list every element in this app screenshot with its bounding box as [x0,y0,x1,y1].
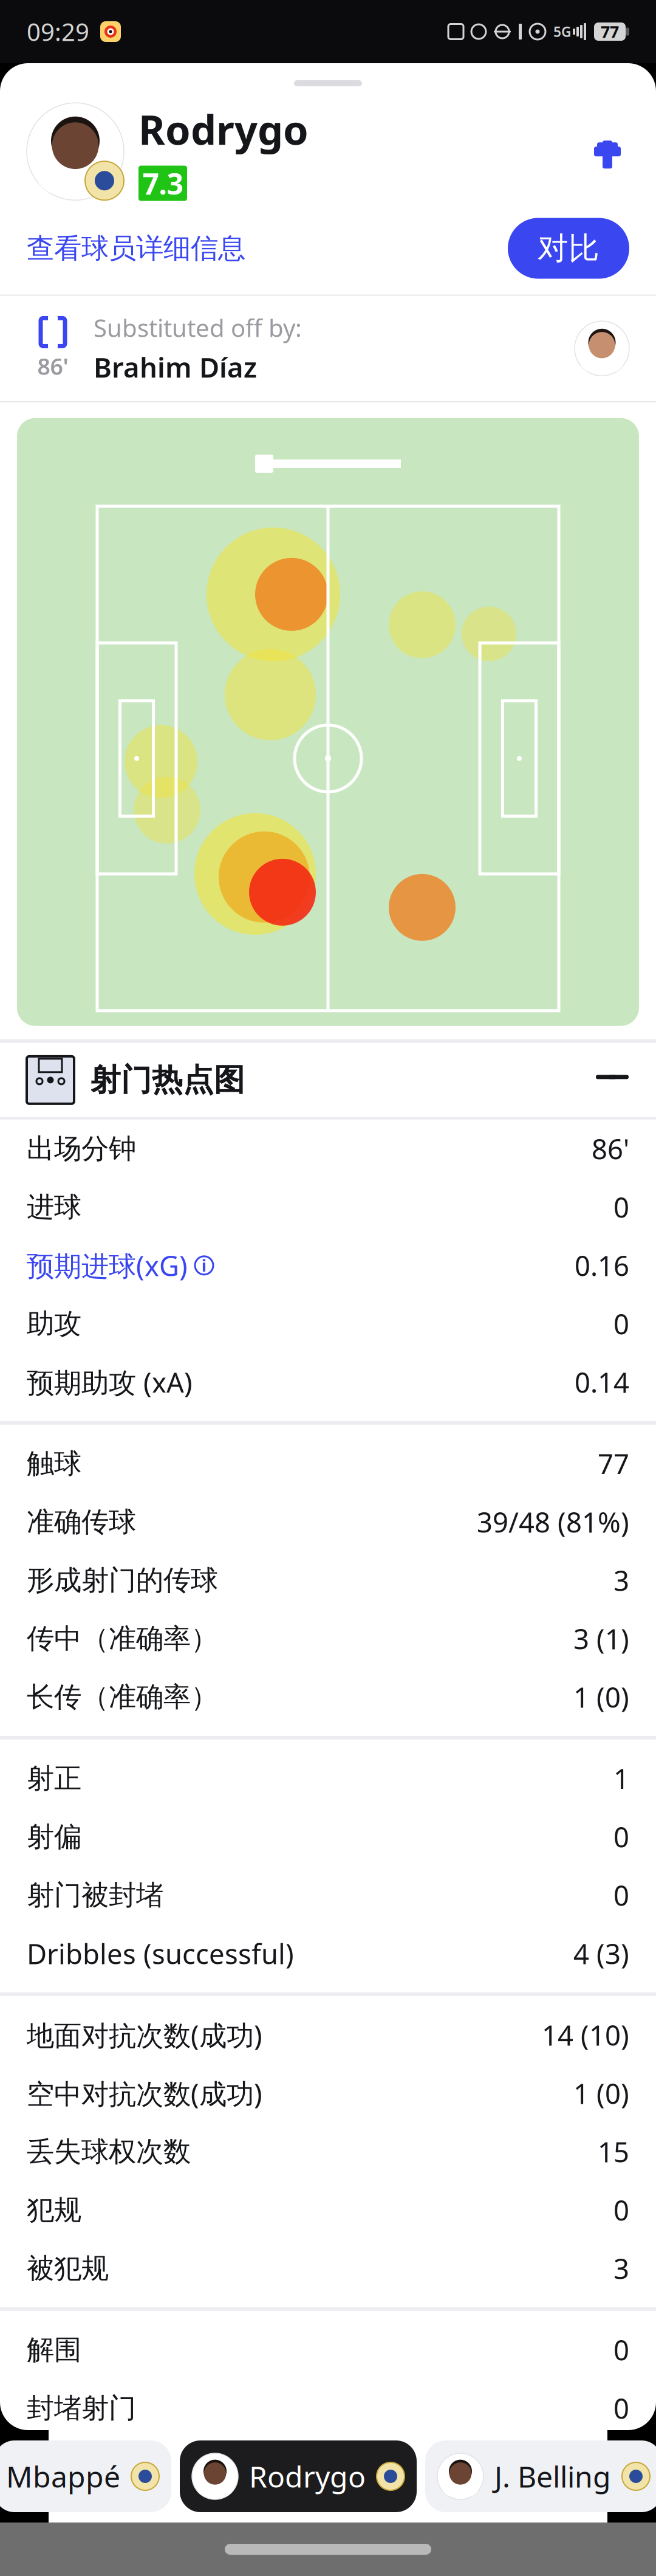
staticText: i [202,1255,207,1276]
staticText: 1 (0) [573,2075,629,2112]
staticText: 射偏 [27,1820,81,1854]
staticText: 传中（准确率） [27,1622,218,1656]
staticText: 0.16 [575,1247,629,1284]
staticText: Substituted off by: [94,312,302,344]
staticText: 14 (10) [542,2017,629,2053]
staticText: 15 [598,2133,629,2170]
staticText: 空中对抗次数(成功) [27,2075,262,2112]
staticText: 地面对抗次数(成功) [27,2017,262,2053]
staticText: 3 (1) [573,1620,629,1657]
staticText: 5G [553,22,571,41]
staticText: Rodrygo [249,2457,366,2496]
staticText: 0 [613,1305,629,1342]
staticText: 解围 [27,2333,81,2367]
staticText: 长传（准确率） [27,1680,218,1714]
button[interactable]: 射门热点图 [0,1043,656,1117]
staticText: 查看球员详细信息 [27,231,245,265]
staticText: 0 [613,1818,629,1855]
staticText: 77 [601,21,619,42]
staticText: 犯规 [27,2193,81,2227]
staticText: 出场分钟 [27,1132,136,1166]
staticText: 4 (3) [573,1935,629,1972]
staticText: 39/48 (81%) [477,1504,629,1540]
staticText: 1 (0) [573,1679,629,1715]
staticText: 射门被封堵 [27,1878,163,1912]
staticText: 预期助攻 (xA) [27,1364,193,1400]
staticText: 7.3 [142,164,183,203]
staticText: 4 [613,2507,629,2543]
staticText: 铲球 [27,2508,81,2542]
staticText: 0 [613,1877,629,1913]
staticText: 射门热点图 [90,1061,245,1099]
staticText: 3 [613,1562,629,1599]
staticText: Brahim Díaz [94,349,257,385]
staticText: 1 [613,2448,629,2485]
staticText: 准确传球 [27,1505,136,1539]
staticText: 0 [613,2331,629,2368]
staticText: 0 [613,2390,629,2426]
staticText: 09:29 [27,15,89,48]
button[interactable]: Mbappé [0,2440,171,2512]
staticText: 射正 [27,1762,81,1795]
staticText: 进球 [27,1190,81,1224]
staticText: 断球 [27,2450,81,2483]
staticText: 0 [613,1189,629,1225]
staticText: 触球 [27,1447,81,1481]
staticText: Dribbles (successful) [27,1935,294,1972]
staticText: 助攻 [27,1307,81,1341]
staticText: 预期进球(xG) [27,1247,188,1284]
staticText: 形成射门的传球 [27,1563,218,1597]
button[interactable]: Rodrygo [180,2440,417,2512]
staticText: 86' [592,1130,629,1167]
staticText: 86' [37,351,68,381]
staticText: 1 [613,1760,629,1797]
button[interactable]: 对比 [508,218,629,279]
staticText: 77 [598,1445,629,1482]
button[interactable]: J. Belling [425,2440,656,2512]
staticText: 封堵射门 [27,2391,136,2425]
staticText: 丢失球权次数 [27,2135,191,2169]
button[interactable]: 查看球员详细信息 [27,225,245,271]
staticText: Mbappé [6,2457,120,2496]
staticText: Rodrygo [138,102,309,156]
button[interactable]: Favorite [590,135,629,169]
staticText: J. Belling [494,2457,611,2496]
staticText: 被犯规 [27,2251,109,2285]
staticText: 对比 [538,229,600,267]
staticText: 0.14 [575,1364,629,1400]
staticText: 3 [613,2250,629,2287]
staticText: 0 [613,2192,629,2228]
